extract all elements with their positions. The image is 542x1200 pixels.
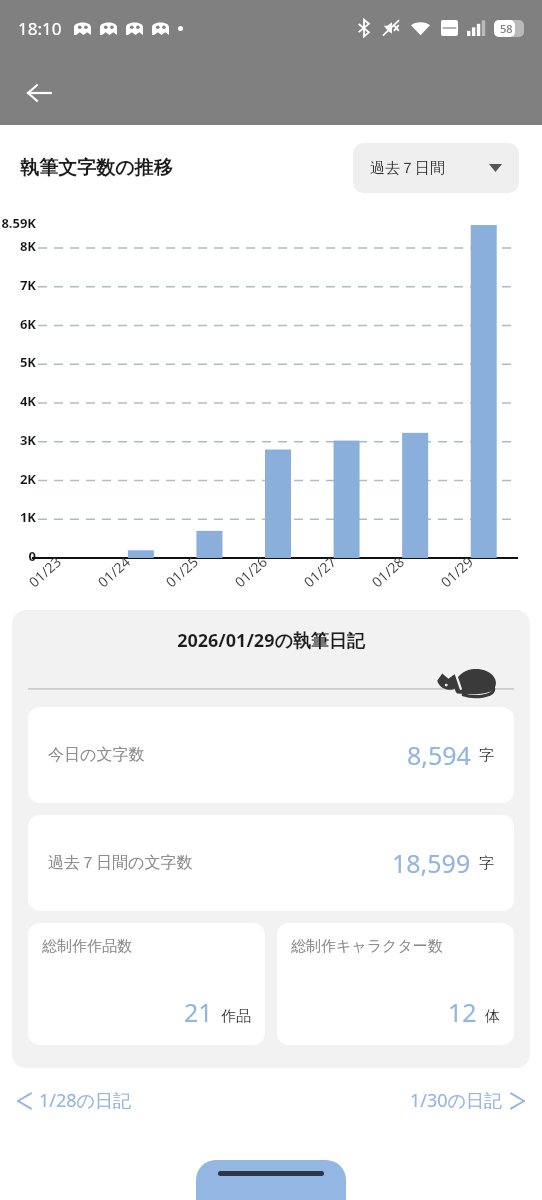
staticText: 01/26 [230, 552, 271, 591]
staticText: 1/30の日記 [410, 1088, 503, 1113]
staticText: 8.59K [0, 214, 36, 232]
staticText: 18:10 [18, 17, 62, 40]
staticText: 5K [0, 353, 36, 371]
staticText: 01/29 [436, 552, 477, 591]
staticText: 58 [500, 21, 513, 36]
staticText: 6K [0, 315, 36, 333]
button[interactable]: 総制作キャラクター数 [277, 923, 514, 1045]
staticText: 過去７日間の文字数 [48, 853, 193, 873]
staticText: 0 [0, 547, 36, 565]
staticText: 01/27 [299, 552, 340, 591]
button[interactable]: 1/28の日記 [10, 1082, 140, 1119]
staticText: 字 [479, 854, 494, 873]
staticText: 2K [0, 470, 36, 488]
staticText: 執筆文字数の推移 [20, 156, 173, 180]
staticText: 3K [0, 431, 36, 449]
staticText: 18,599 [392, 846, 471, 880]
button[interactable]: 1/30の日記 [402, 1082, 532, 1119]
staticText: 1/28の日記 [39, 1088, 132, 1113]
staticText: 字 [479, 746, 494, 765]
staticText: 01/28 [367, 552, 408, 591]
button[interactable]: Back [14, 68, 64, 118]
staticText: 総制作キャラクター数 [291, 937, 443, 956]
staticText: 01/25 [161, 552, 202, 591]
button[interactable]: 過去７日間の文字数 [28, 815, 514, 911]
staticText: 2026/01/29の執筆日記 [12, 628, 530, 653]
staticText: 21 [184, 995, 213, 1029]
button[interactable]: Open panel [196, 1160, 346, 1200]
button[interactable]: 過去７日間 [353, 143, 519, 193]
staticText: 7K [0, 276, 36, 294]
staticText: 8K [0, 237, 36, 255]
staticText: 8,594 [407, 738, 471, 772]
staticText: 1K [0, 508, 36, 526]
button[interactable]: 総制作作品数 [28, 923, 265, 1045]
staticText: 体 [485, 1007, 500, 1026]
staticText: 作品 [221, 1007, 251, 1026]
staticText: 01/23 [24, 552, 65, 591]
staticText: 12 [448, 995, 477, 1029]
button[interactable]: 今日の文字数 [28, 707, 514, 803]
staticText: 01/24 [93, 552, 134, 591]
staticText: 4K [0, 392, 36, 410]
staticText: 過去７日間 [370, 159, 445, 178]
staticText: 総制作作品数 [42, 937, 132, 956]
staticText: 今日の文字数 [48, 745, 145, 765]
